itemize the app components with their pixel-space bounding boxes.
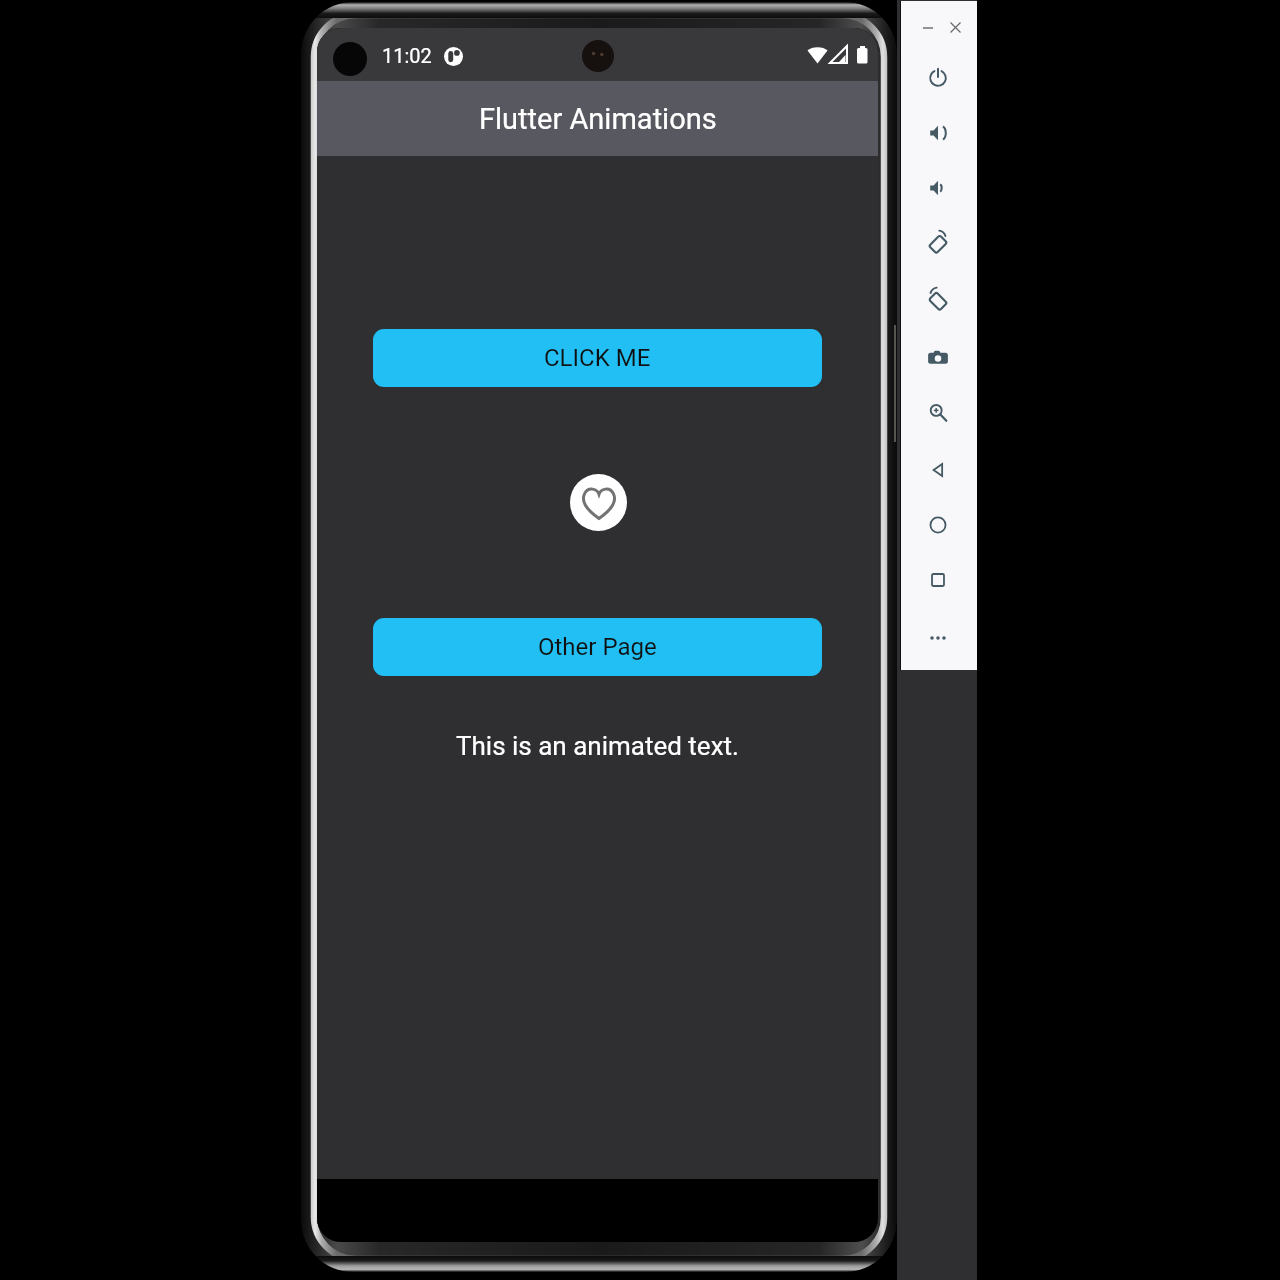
- button[interactable]: Recent apps: [919, 561, 957, 599]
- button[interactable]: CLICK ME: [373, 329, 822, 387]
- button[interactable]: Volume up: [919, 114, 957, 152]
- button[interactable]: Close: [944, 16, 966, 38]
- staticText: CLICK ME: [544, 344, 651, 372]
- button[interactable]: Power: [919, 59, 957, 97]
- button[interactable]: Volume down: [919, 169, 957, 207]
- staticText: Flutter Animations: [479, 102, 717, 136]
- button[interactable]: Favorite: [570, 474, 627, 531]
- button[interactable]: Rotate right: [919, 281, 957, 319]
- staticText: Other Page: [538, 633, 657, 661]
- button[interactable]: Rotate left: [919, 224, 957, 262]
- button[interactable]: Screenshot: [919, 339, 957, 377]
- button[interactable]: Back: [919, 451, 957, 489]
- staticText: This is an animated text.: [456, 731, 739, 761]
- button[interactable]: Other Page: [373, 618, 822, 676]
- staticText: 11:02: [382, 44, 432, 67]
- button[interactable]: Minimize: [917, 17, 939, 39]
- button[interactable]: Zoom in: [919, 394, 957, 432]
- button[interactable]: More options: [919, 619, 957, 657]
- button[interactable]: Home: [919, 506, 957, 544]
